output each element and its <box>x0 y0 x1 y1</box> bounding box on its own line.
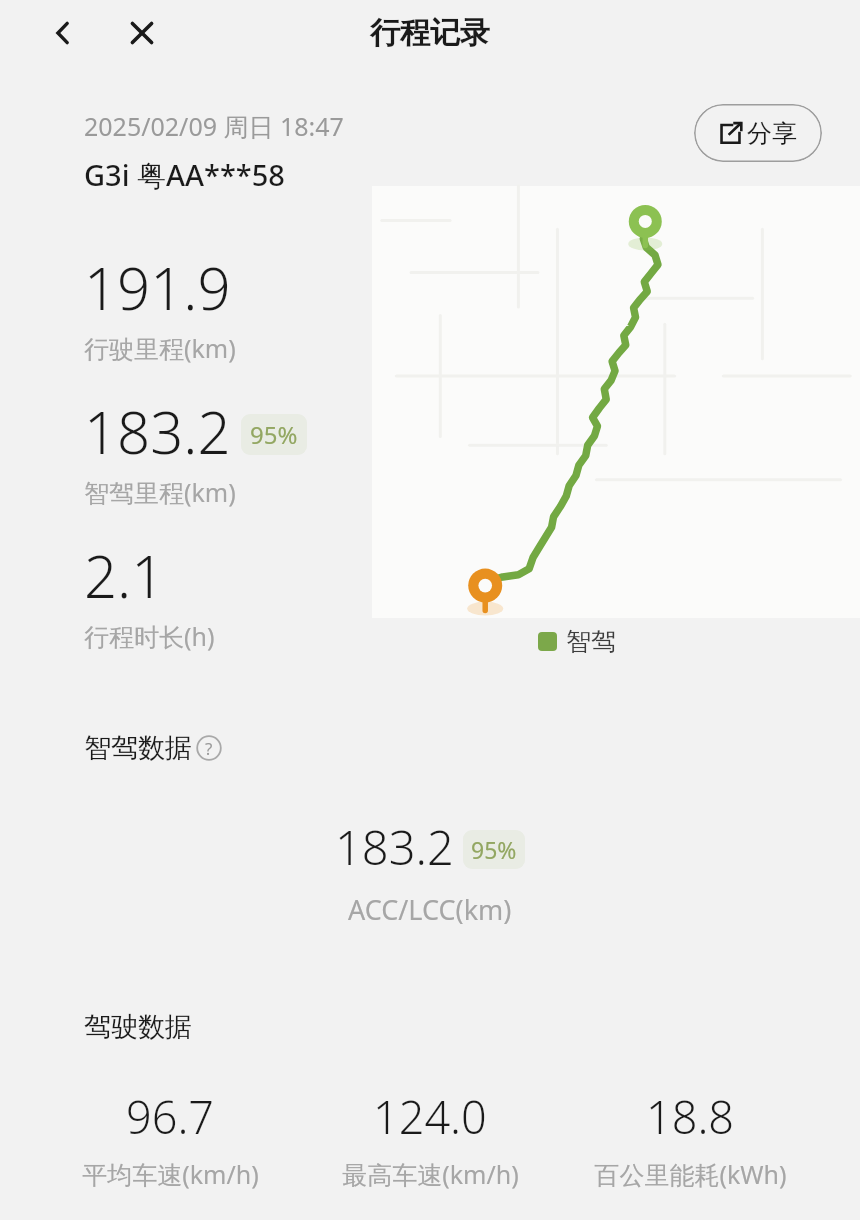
staticText: 95% <box>250 418 298 451</box>
button[interactable]: 124.0 <box>300 1086 560 1191</box>
staticText: 18.8 <box>646 1086 735 1147</box>
staticText: 2.1 <box>84 536 165 615</box>
staticText: 124.0 <box>373 1086 487 1147</box>
button[interactable]: Close <box>112 3 172 63</box>
staticText: 2025/02/09 周日 18:47 <box>84 109 344 143</box>
staticText: ACC/LCC(km) <box>348 891 512 928</box>
staticText: 智驾数据 <box>84 731 192 765</box>
staticText: 行驶里程(km) <box>84 331 236 365</box>
staticText: 智驾 <box>566 626 616 657</box>
staticText: 分享 <box>747 118 797 149</box>
staticText: 行程记录 <box>370 14 490 52</box>
button[interactable]: Back <box>33 3 93 63</box>
staticText: 183.2 <box>335 815 454 879</box>
button[interactable]: 分享 <box>694 104 822 162</box>
staticText: 96.7 <box>126 1086 215 1147</box>
button[interactable]: Trip route map <box>372 186 860 618</box>
button[interactable]: 96.7 <box>40 1086 300 1191</box>
staticText: ? <box>205 737 213 760</box>
staticText: 95% <box>471 834 517 865</box>
staticText: 平均车速(km/h) <box>82 1157 259 1191</box>
staticText: 智驾里程(km) <box>84 475 236 509</box>
staticText: G3i 粤AA***58 <box>84 155 285 195</box>
staticText: 最高车速(km/h) <box>342 1157 519 1191</box>
staticText: 驾驶数据 <box>84 1010 192 1044</box>
other: Info <box>196 735 222 761</box>
button[interactable]: 智驾数据 <box>84 731 222 765</box>
staticText: 191.9 <box>84 248 231 327</box>
button[interactable]: 18.8 <box>560 1086 820 1191</box>
staticText: 183.2 <box>84 392 231 471</box>
staticText: 行程时长(h) <box>84 619 215 653</box>
staticText: 百公里能耗(kWh) <box>594 1157 787 1191</box>
